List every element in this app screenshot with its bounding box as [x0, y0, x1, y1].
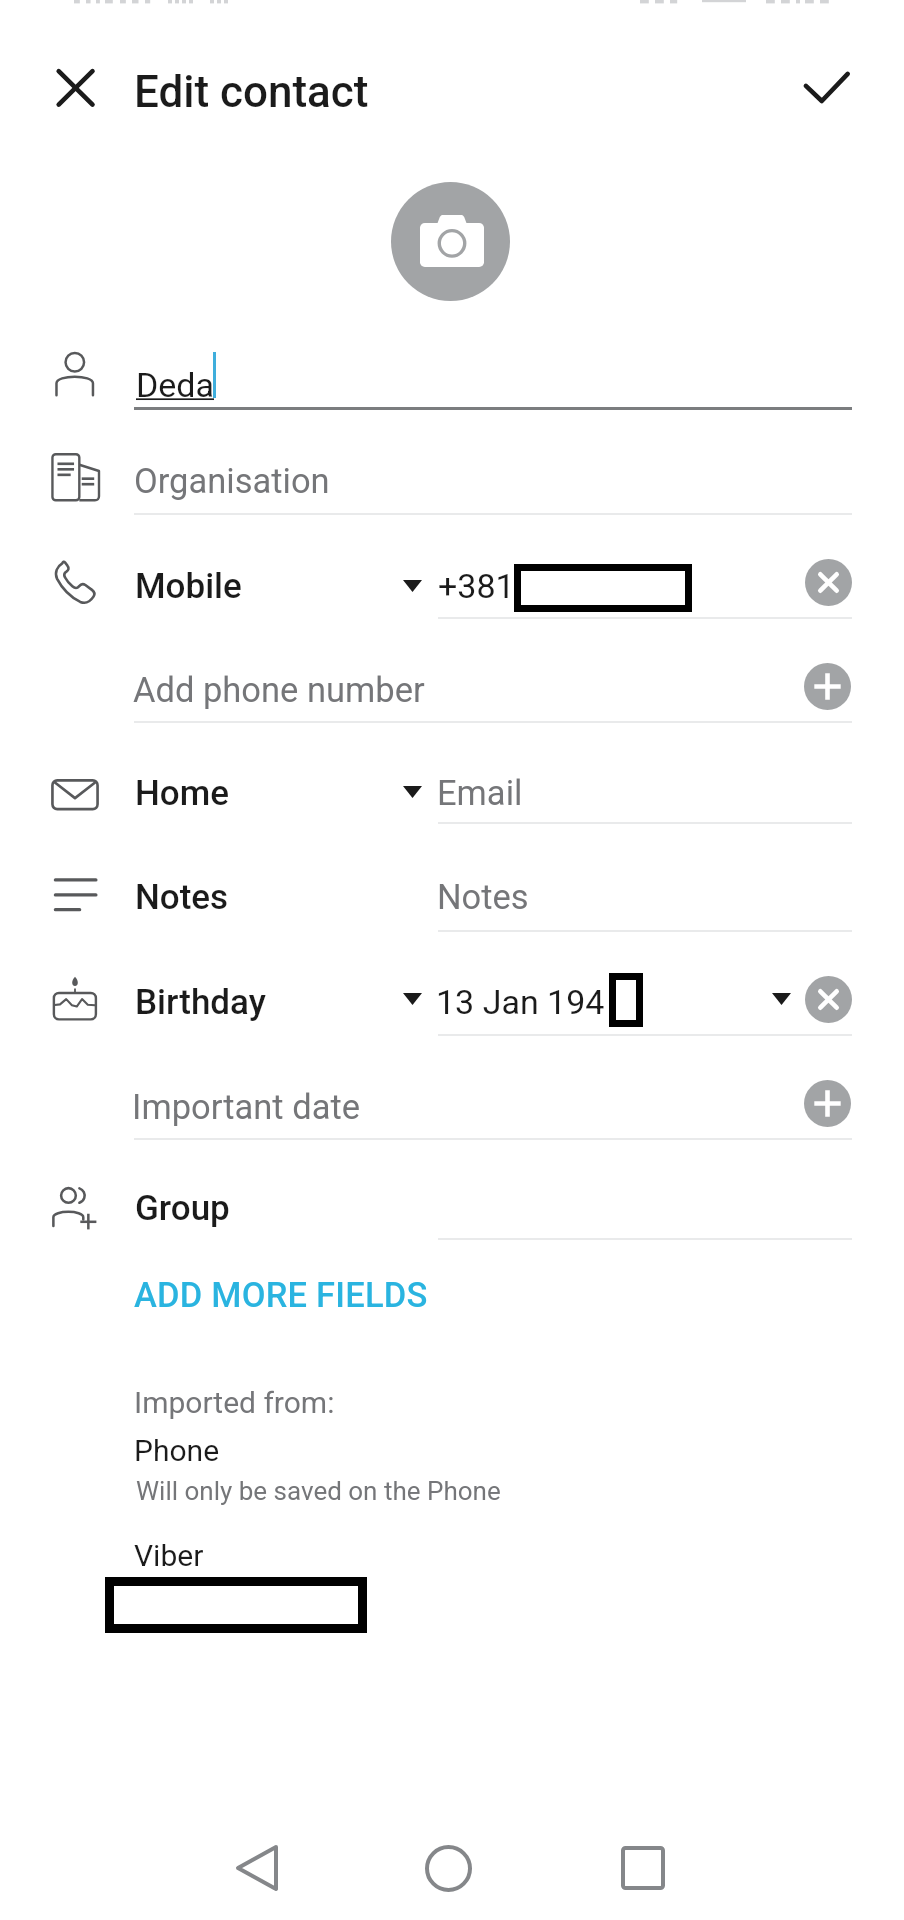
- button[interactable]: Close: [47, 59, 105, 117]
- button[interactable]: Add important date: [804, 1080, 851, 1127]
- staticText: +381: [438, 566, 515, 606]
- button[interactable]: Home: [388, 1824, 508, 1912]
- button[interactable]: Back: [197, 1824, 317, 1912]
- staticText: Email: [437, 773, 523, 813]
- staticText: Birthday: [135, 982, 266, 1023]
- staticText: Home: [135, 773, 229, 814]
- button[interactable]: ADD MORE FIELDS: [118, 1264, 442, 1326]
- staticText: Organisation: [134, 461, 330, 501]
- staticText: Important date: [132, 1087, 360, 1127]
- button[interactable]: Add phone number: [804, 663, 851, 710]
- staticText: Will only be saved on the Phone: [136, 1476, 501, 1506]
- staticText: ADD MORE FIELDS: [134, 1275, 428, 1315]
- staticText: Deda: [136, 365, 215, 405]
- staticText: 13 Jan 194: [436, 982, 605, 1022]
- staticText: Viber: [134, 1538, 204, 1573]
- staticText: Add phone number: [133, 670, 425, 710]
- button[interactable]: Save contact: [798, 59, 856, 117]
- button[interactable]: Remove phone number: [805, 559, 852, 606]
- staticText: Phone: [134, 1433, 220, 1468]
- staticText: Group: [135, 1188, 230, 1229]
- staticText: Edit contact: [134, 66, 369, 118]
- staticText: Imported from:: [134, 1385, 335, 1420]
- staticText: Notes: [437, 877, 529, 917]
- staticText: Mobile: [135, 566, 242, 607]
- button[interactable]: Change contact photo: [391, 182, 510, 301]
- staticText: Notes: [135, 877, 229, 918]
- button[interactable]: Remove birthday: [805, 976, 852, 1023]
- button[interactable]: Recent apps: [583, 1824, 703, 1912]
